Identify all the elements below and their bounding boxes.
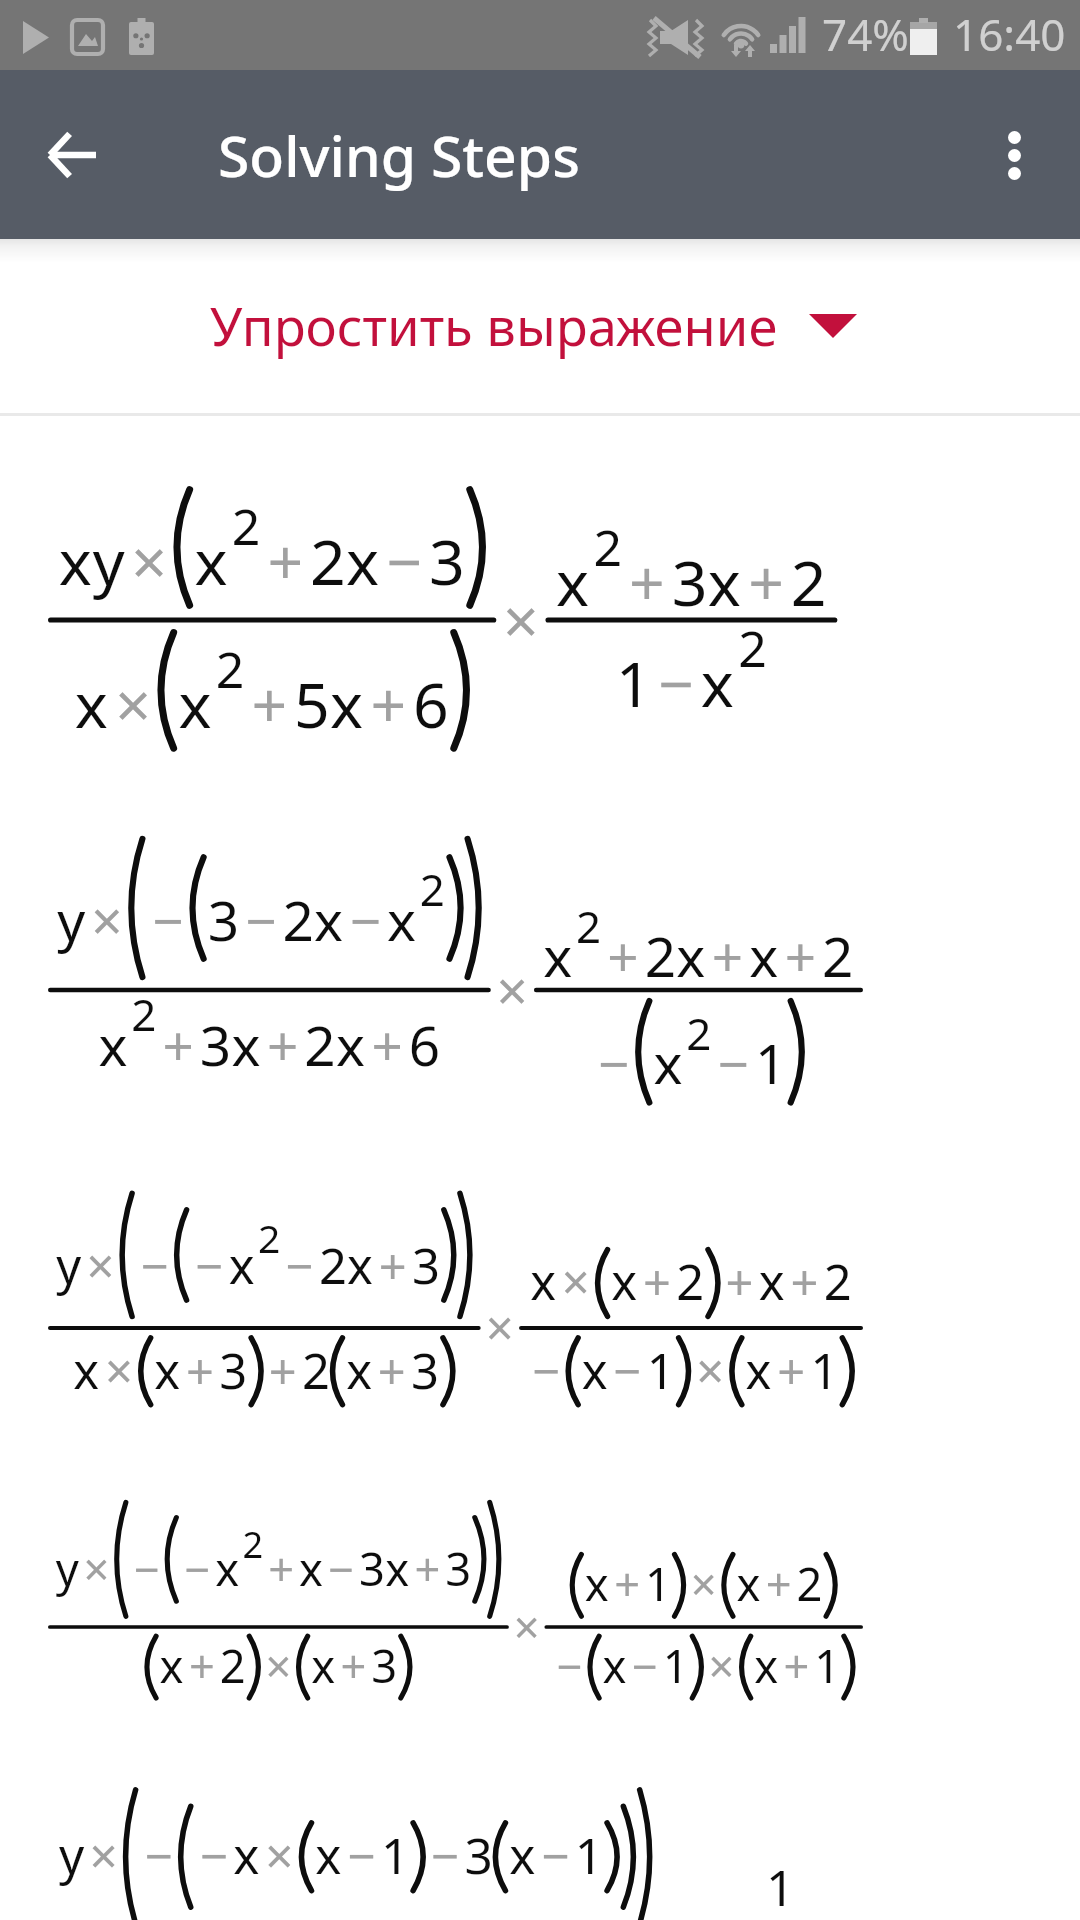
button[interactable]: More options (966, 107, 1062, 203)
button[interactable]: Back (24, 107, 120, 203)
staticText: Solving Steps (218, 116, 580, 194)
staticText: Упростить выражение (210, 290, 778, 362)
button[interactable]: Упростить выражение (210, 290, 857, 362)
